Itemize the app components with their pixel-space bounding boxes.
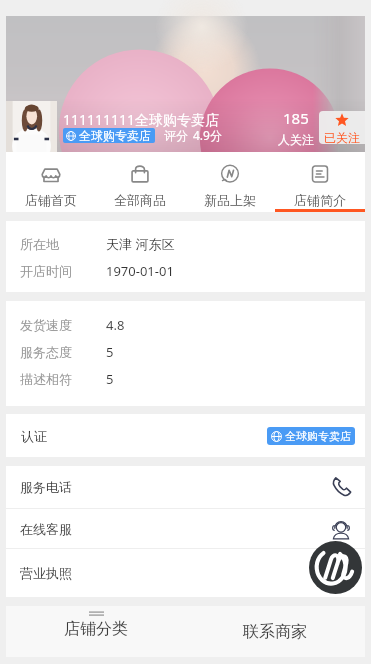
button[interactable]: Logo <box>309 541 362 594</box>
staticText: 天津 河东区 <box>106 235 175 253</box>
staticText: 店铺简介 <box>294 192 346 208</box>
button[interactable]: 联系商家 <box>185 606 365 657</box>
staticText: 5 <box>106 343 114 361</box>
button[interactable]: 店铺简介 <box>275 152 365 212</box>
staticText: 评分 <box>164 128 188 143</box>
staticText: 营业执照 <box>20 565 72 581</box>
staticText: 服务电话 <box>20 479 72 495</box>
staticText: 全球购专卖店 <box>285 429 351 443</box>
staticText: 人关注 <box>278 132 314 147</box>
staticText: 店铺分类 <box>64 619 128 639</box>
button[interactable]: 店铺分类 <box>6 606 185 657</box>
button[interactable]: 认证 <box>6 414 365 457</box>
staticText: 联系商家 <box>243 622 307 642</box>
button[interactable]: 已关注 <box>319 111 365 144</box>
staticText: 已关注 <box>324 130 360 144</box>
staticText: 发货速度 <box>20 317 72 333</box>
button[interactable]: 营业执照 <box>6 549 365 596</box>
staticText: 店铺首页 <box>25 192 77 208</box>
staticText: 在线客服 <box>20 521 72 537</box>
staticText: 所在地 <box>20 236 59 252</box>
staticText: 1970-01-01 <box>106 262 174 280</box>
staticText: 开店时间 <box>20 263 72 279</box>
staticText: 认证 <box>21 428 47 444</box>
staticText: 全部商品 <box>114 192 166 208</box>
button[interactable]: 服务电话 <box>6 466 365 508</box>
staticText: 服务态度 <box>20 344 72 360</box>
staticText: 4.8 <box>106 316 125 334</box>
staticText: 描述相符 <box>20 371 72 387</box>
button[interactable]: 全部商品 <box>95 152 185 212</box>
staticText: 4.9分 <box>193 127 222 143</box>
button[interactable]: 店铺首页 <box>6 152 95 212</box>
button[interactable]: 新品上架 <box>185 152 275 212</box>
button[interactable]: 在线客服 <box>6 509 365 548</box>
staticText: 111111111全球购专卖店 <box>63 110 220 129</box>
staticText: 5 <box>106 370 114 388</box>
staticText: 185 <box>283 108 309 128</box>
staticText: 新品上架 <box>204 192 256 208</box>
staticText: 全球购专卖店 <box>79 128 151 143</box>
